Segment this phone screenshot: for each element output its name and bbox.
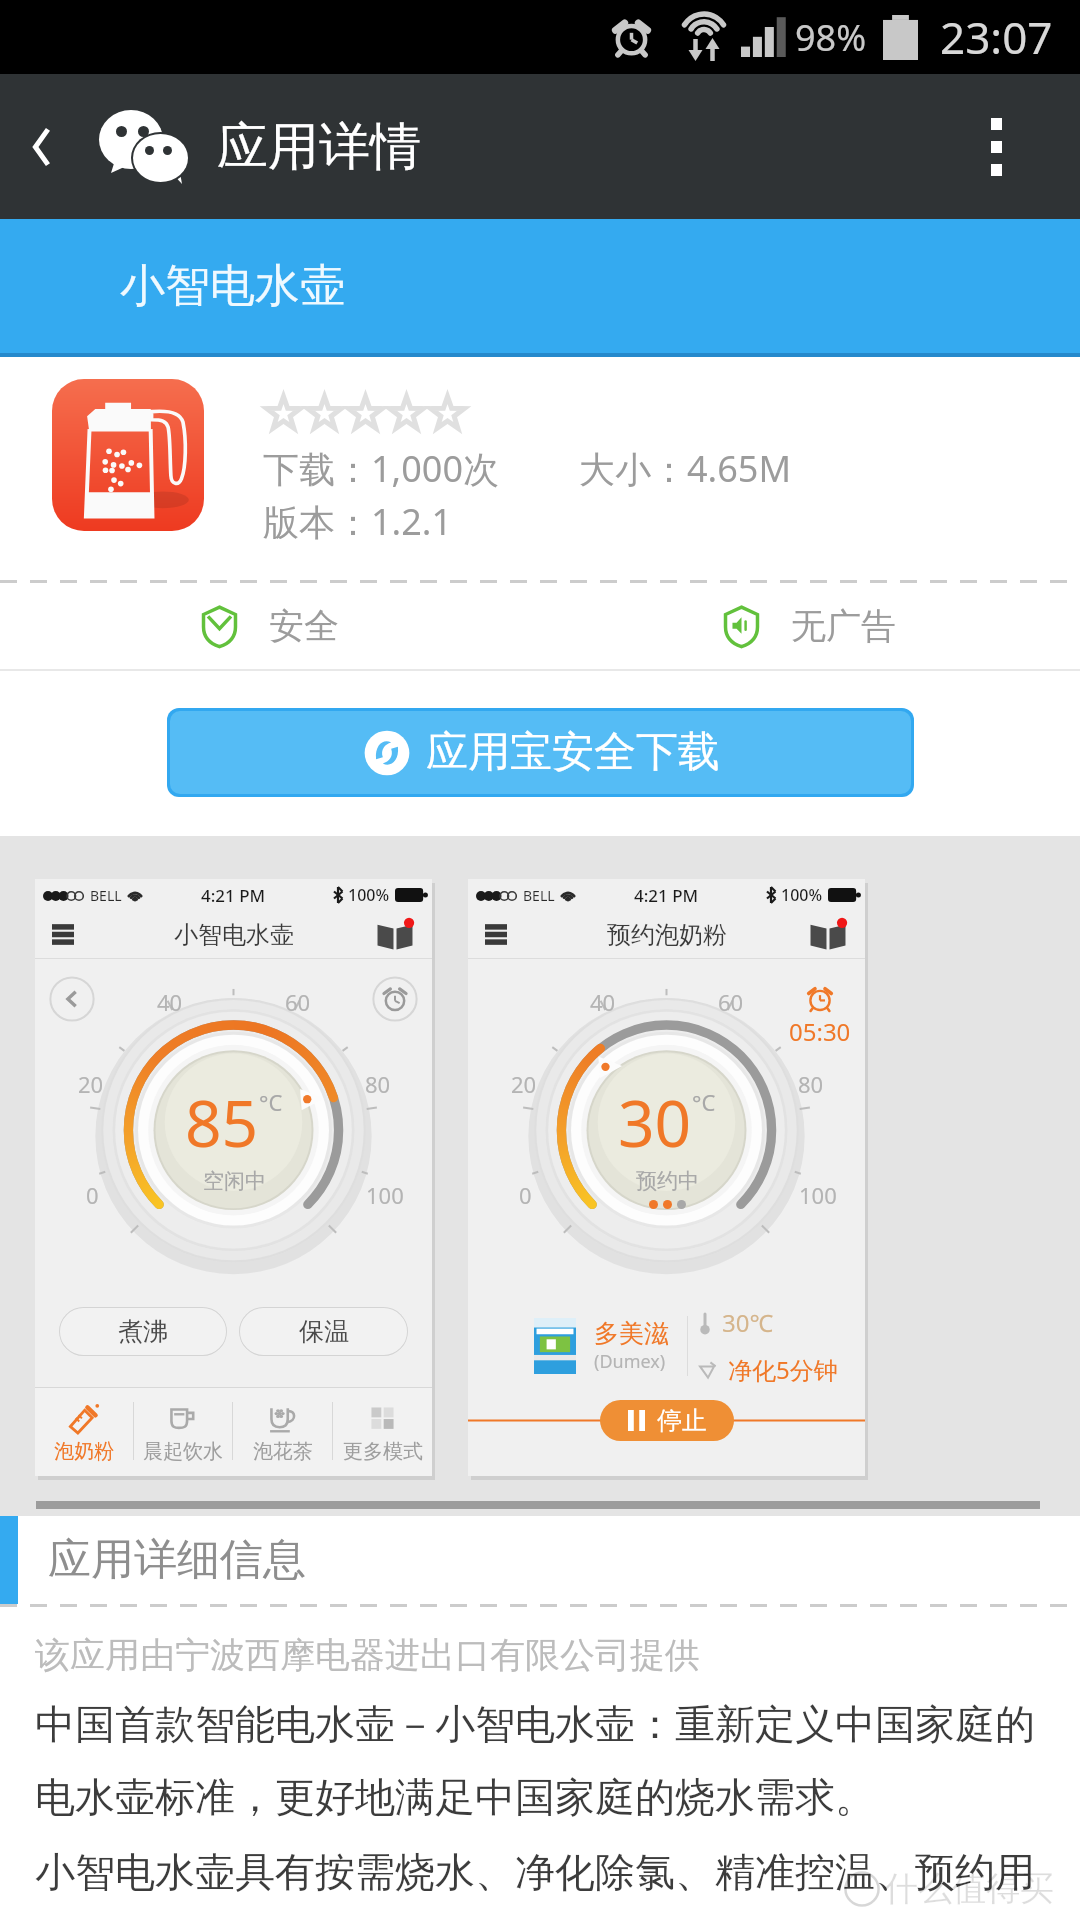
staticText: 0 xyxy=(519,1180,532,1210)
staticText: 30 xyxy=(618,1079,692,1166)
button[interactable]: Alarm xyxy=(372,976,418,1022)
button[interactable]: Screenshot 2 xyxy=(468,879,865,1476)
staticText: 净化5分钟 xyxy=(728,1353,838,1386)
staticText: 保温 xyxy=(299,1316,349,1347)
staticText: 停止 xyxy=(657,1405,707,1436)
staticText: 20 xyxy=(78,1069,104,1099)
button[interactable]: Back xyxy=(49,976,95,1022)
staticText: 应用宝安全下载 xyxy=(426,726,720,779)
staticText: 100 xyxy=(799,1180,837,1210)
button[interactable]: Screenshot 1 xyxy=(35,879,432,1476)
button[interactable]: More options xyxy=(912,74,1080,219)
button[interactable]: 煮沸 xyxy=(59,1307,227,1356)
staticText: 小智电水壶 xyxy=(120,258,345,315)
staticText: 0 xyxy=(86,1180,99,1210)
staticText: 30℃ xyxy=(722,1306,774,1339)
staticText: 安全 xyxy=(269,604,339,648)
button[interactable]: 安全 xyxy=(0,583,540,669)
staticText: 100% xyxy=(781,884,823,906)
staticText: °C xyxy=(692,1087,716,1117)
button[interactable]: 泡花茶 xyxy=(233,1388,332,1476)
staticText: 60 xyxy=(285,987,311,1017)
button[interactable]: 晨起饮水 xyxy=(134,1388,232,1476)
staticText: 版本：1.2.1 xyxy=(263,497,453,546)
staticText: 晨起饮水 xyxy=(143,1439,223,1464)
staticText: 泡花茶 xyxy=(253,1439,313,1464)
staticText: 下载：1,000次 xyxy=(263,444,500,493)
staticText: 泡奶粉 xyxy=(54,1439,114,1464)
staticText: 20 xyxy=(511,1069,537,1099)
staticText: 该应用由宁波西摩电器进出口有限公司提供 xyxy=(35,1633,700,1677)
staticText: 多美滋 xyxy=(594,1318,669,1349)
button[interactable]: 停止 xyxy=(600,1400,734,1441)
staticText: 更多模式 xyxy=(343,1439,423,1464)
staticText: 80 xyxy=(798,1069,824,1099)
staticText: 40 xyxy=(590,987,616,1017)
staticText: 预约中 xyxy=(636,1168,699,1194)
button[interactable]: 泡奶粉 xyxy=(35,1388,133,1476)
staticText: 小智电水壶具有按需烧水、净化除氯、精准控温、预约用 xyxy=(35,1847,1035,1897)
staticText: °C xyxy=(259,1087,283,1117)
staticText: 什么值得买 xyxy=(884,1867,1054,1910)
button[interactable]: 无广告 xyxy=(540,583,1080,669)
button[interactable]: 更多模式 xyxy=(333,1388,432,1476)
staticText: 85 xyxy=(185,1079,259,1166)
button[interactable]: 应用宝安全下载 xyxy=(170,711,911,794)
staticText: 4:21 PM xyxy=(201,884,266,907)
button[interactable]: 保温 xyxy=(239,1307,408,1356)
staticText: BELL xyxy=(90,886,122,905)
staticText: 大小：4.65M xyxy=(579,444,792,493)
button[interactable]: Back xyxy=(0,74,82,219)
staticText: 应用详情 xyxy=(217,115,421,179)
staticText: 4:21 PM xyxy=(634,884,699,907)
staticText: 60 xyxy=(718,987,744,1017)
staticText: 煮沸 xyxy=(118,1316,168,1347)
staticText: 100% xyxy=(348,884,390,906)
staticText: 100 xyxy=(366,1180,404,1210)
staticText: 应用详细信息 xyxy=(48,1533,306,1587)
staticText: 23:07 xyxy=(940,7,1053,67)
staticText: 05:30 xyxy=(789,1015,851,1048)
staticText: 小智电水壶 xyxy=(174,920,294,950)
staticText: BELL xyxy=(523,886,555,905)
staticText: 80 xyxy=(365,1069,391,1099)
staticText: 空闲中 xyxy=(203,1168,266,1194)
staticText: 预约泡奶粉 xyxy=(607,920,727,950)
staticText: 98% xyxy=(795,13,867,62)
staticText: 中国首款智能电水壶－小智电水壶：重新定义中国家庭的电水壶标准，更好地满足中国家庭… xyxy=(35,1699,1068,1822)
staticText: (Dumex) xyxy=(594,1349,666,1374)
staticText: 40 xyxy=(157,987,183,1017)
staticText: 无广告 xyxy=(791,604,896,648)
